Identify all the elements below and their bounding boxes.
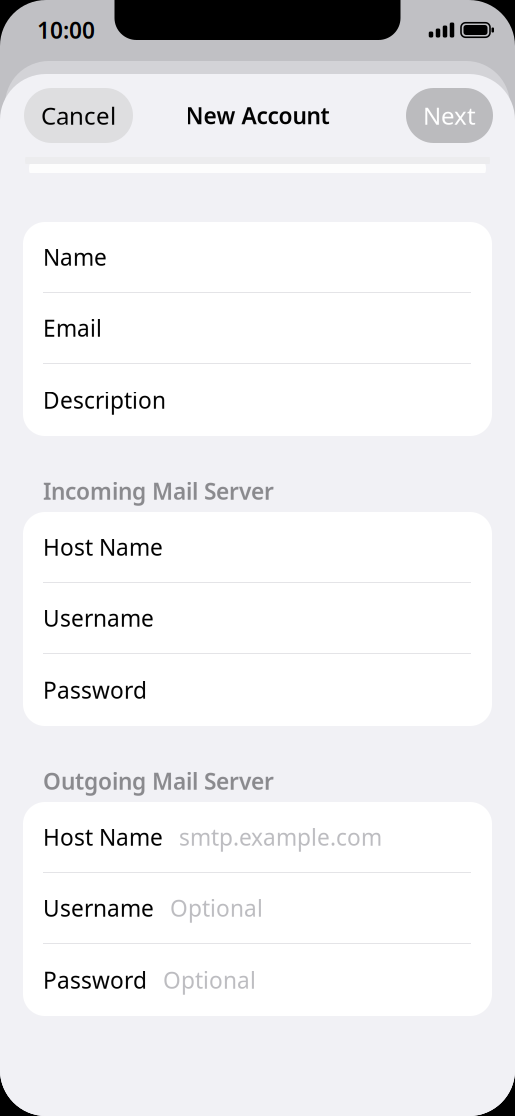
button[interactable]: Cancel	[24, 88, 133, 143]
staticText: New Account	[185, 100, 329, 130]
button[interactable]: Username	[23, 583, 492, 654]
staticText: smtp.example.com	[179, 822, 382, 852]
button[interactable]: Description	[23, 364, 492, 436]
staticText: 10:00	[37, 15, 95, 45]
button[interactable]: Password	[23, 944, 492, 1016]
staticText: Username	[43, 893, 154, 923]
button[interactable]: Host Name	[23, 512, 492, 583]
staticText: Outgoing Mail Server	[43, 766, 274, 796]
staticText: Username	[43, 603, 154, 633]
staticText: Optional	[163, 965, 256, 995]
staticText: Cancel	[41, 100, 116, 131]
staticText: Next	[423, 100, 476, 131]
staticText: Optional	[170, 893, 263, 923]
button[interactable]: Password	[23, 654, 492, 726]
staticText: Incoming Mail Server	[43, 476, 274, 506]
staticText: Host Name	[43, 532, 163, 562]
button[interactable]: Next	[406, 88, 493, 143]
staticText: Email	[43, 313, 102, 343]
staticText: Password	[43, 965, 147, 995]
button[interactable]: Name	[23, 222, 492, 293]
staticText: Password	[43, 675, 147, 705]
staticText: Host Name	[43, 822, 163, 852]
button[interactable]: Host Name	[23, 802, 492, 873]
button[interactable]: Email	[23, 293, 492, 364]
staticText: Description	[43, 385, 166, 415]
staticText: Name	[43, 242, 107, 272]
button[interactable]: Username	[23, 873, 492, 944]
